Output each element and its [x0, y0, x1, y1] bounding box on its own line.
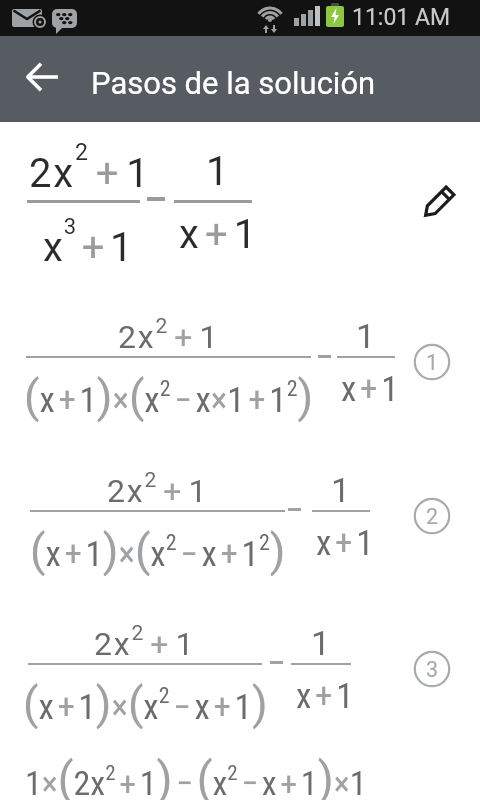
button[interactable]: 2: [414, 498, 450, 534]
button[interactable]: [14, 50, 72, 108]
staticText: x + 1: [296, 676, 354, 717]
button[interactable]: [0, 461, 480, 579]
staticText: Pasos de la solución: [91, 65, 376, 101]
staticText: x3 + 1: [43, 214, 134, 271]
staticText: 1: [331, 470, 351, 510]
staticText: (x + 1)×(x2 − x + 12): [30, 524, 286, 577]
button[interactable]: 1: [414, 344, 450, 380]
staticText: 2x2 + 1: [118, 314, 220, 355]
button[interactable]: [0, 307, 480, 425]
staticText: x + 1: [316, 523, 374, 564]
staticText: 11:01 AM: [352, 4, 451, 31]
button[interactable]: [0, 614, 480, 732]
staticText: 1: [206, 148, 229, 195]
staticText: (x + 1)×(x2 − x×1 + 12): [24, 370, 314, 423]
staticText: 2x2 + 1: [29, 139, 151, 197]
staticText: x + 1: [179, 211, 258, 258]
staticText: 3: [426, 657, 439, 682]
staticText: 1: [426, 350, 439, 375]
staticText: 1×(2x2 + 1) − (x2 − x + 1)×1: [25, 752, 367, 800]
button[interactable]: [413, 178, 463, 228]
staticText: 2x2 + 1: [94, 621, 196, 662]
staticText: 2x2 + 1: [107, 468, 209, 509]
staticText: 1: [356, 316, 376, 356]
button[interactable]: 3: [414, 651, 450, 687]
staticText: x + 1: [341, 369, 399, 410]
staticText: 1: [311, 623, 331, 663]
button[interactable]: [0, 126, 480, 261]
staticText: 2: [426, 504, 439, 529]
button[interactable]: [0, 745, 480, 800]
staticText: (x + 1)×(x2 − x + 1): [23, 677, 268, 730]
